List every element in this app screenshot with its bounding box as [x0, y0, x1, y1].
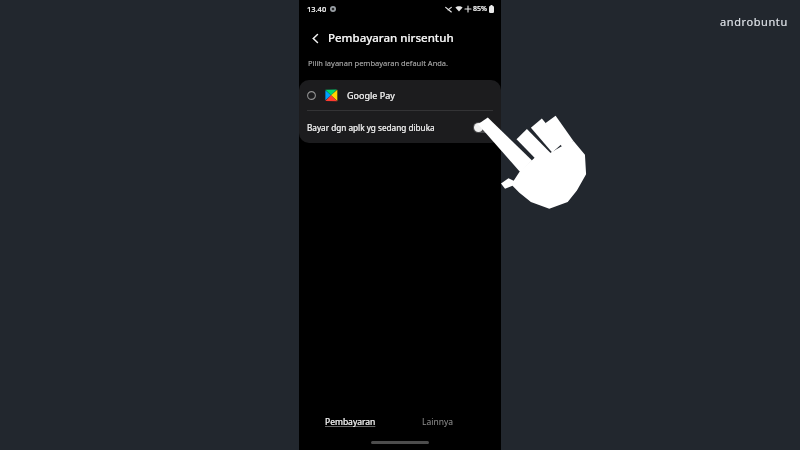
- staticText: 13.40: [307, 4, 327, 14]
- staticText: androbuntu: [720, 14, 788, 29]
- button[interactable]: Back: [305, 28, 325, 48]
- button[interactable]: Bayar dgn aplk yg sedang dibuka: [299, 111, 501, 143]
- staticText: 85%: [473, 4, 487, 14]
- staticText: Google Pay: [347, 89, 395, 101]
- staticText: Lainnya: [422, 416, 454, 428]
- staticText: Pembayaran nirsentuh: [328, 30, 454, 46]
- staticText: Bayar dgn aplk yg sedang dibuka: [307, 122, 435, 133]
- staticText: Pembayaran: [325, 416, 376, 428]
- staticText: Pilih layanan pembayaran default Anda.: [308, 58, 449, 68]
- button[interactable]: Lainnya: [422, 416, 454, 428]
- button[interactable]: Pembayaran: [325, 416, 376, 428]
- other: Tap cursor: [478, 103, 593, 218]
- button[interactable]: Google Pay: [299, 80, 501, 110]
